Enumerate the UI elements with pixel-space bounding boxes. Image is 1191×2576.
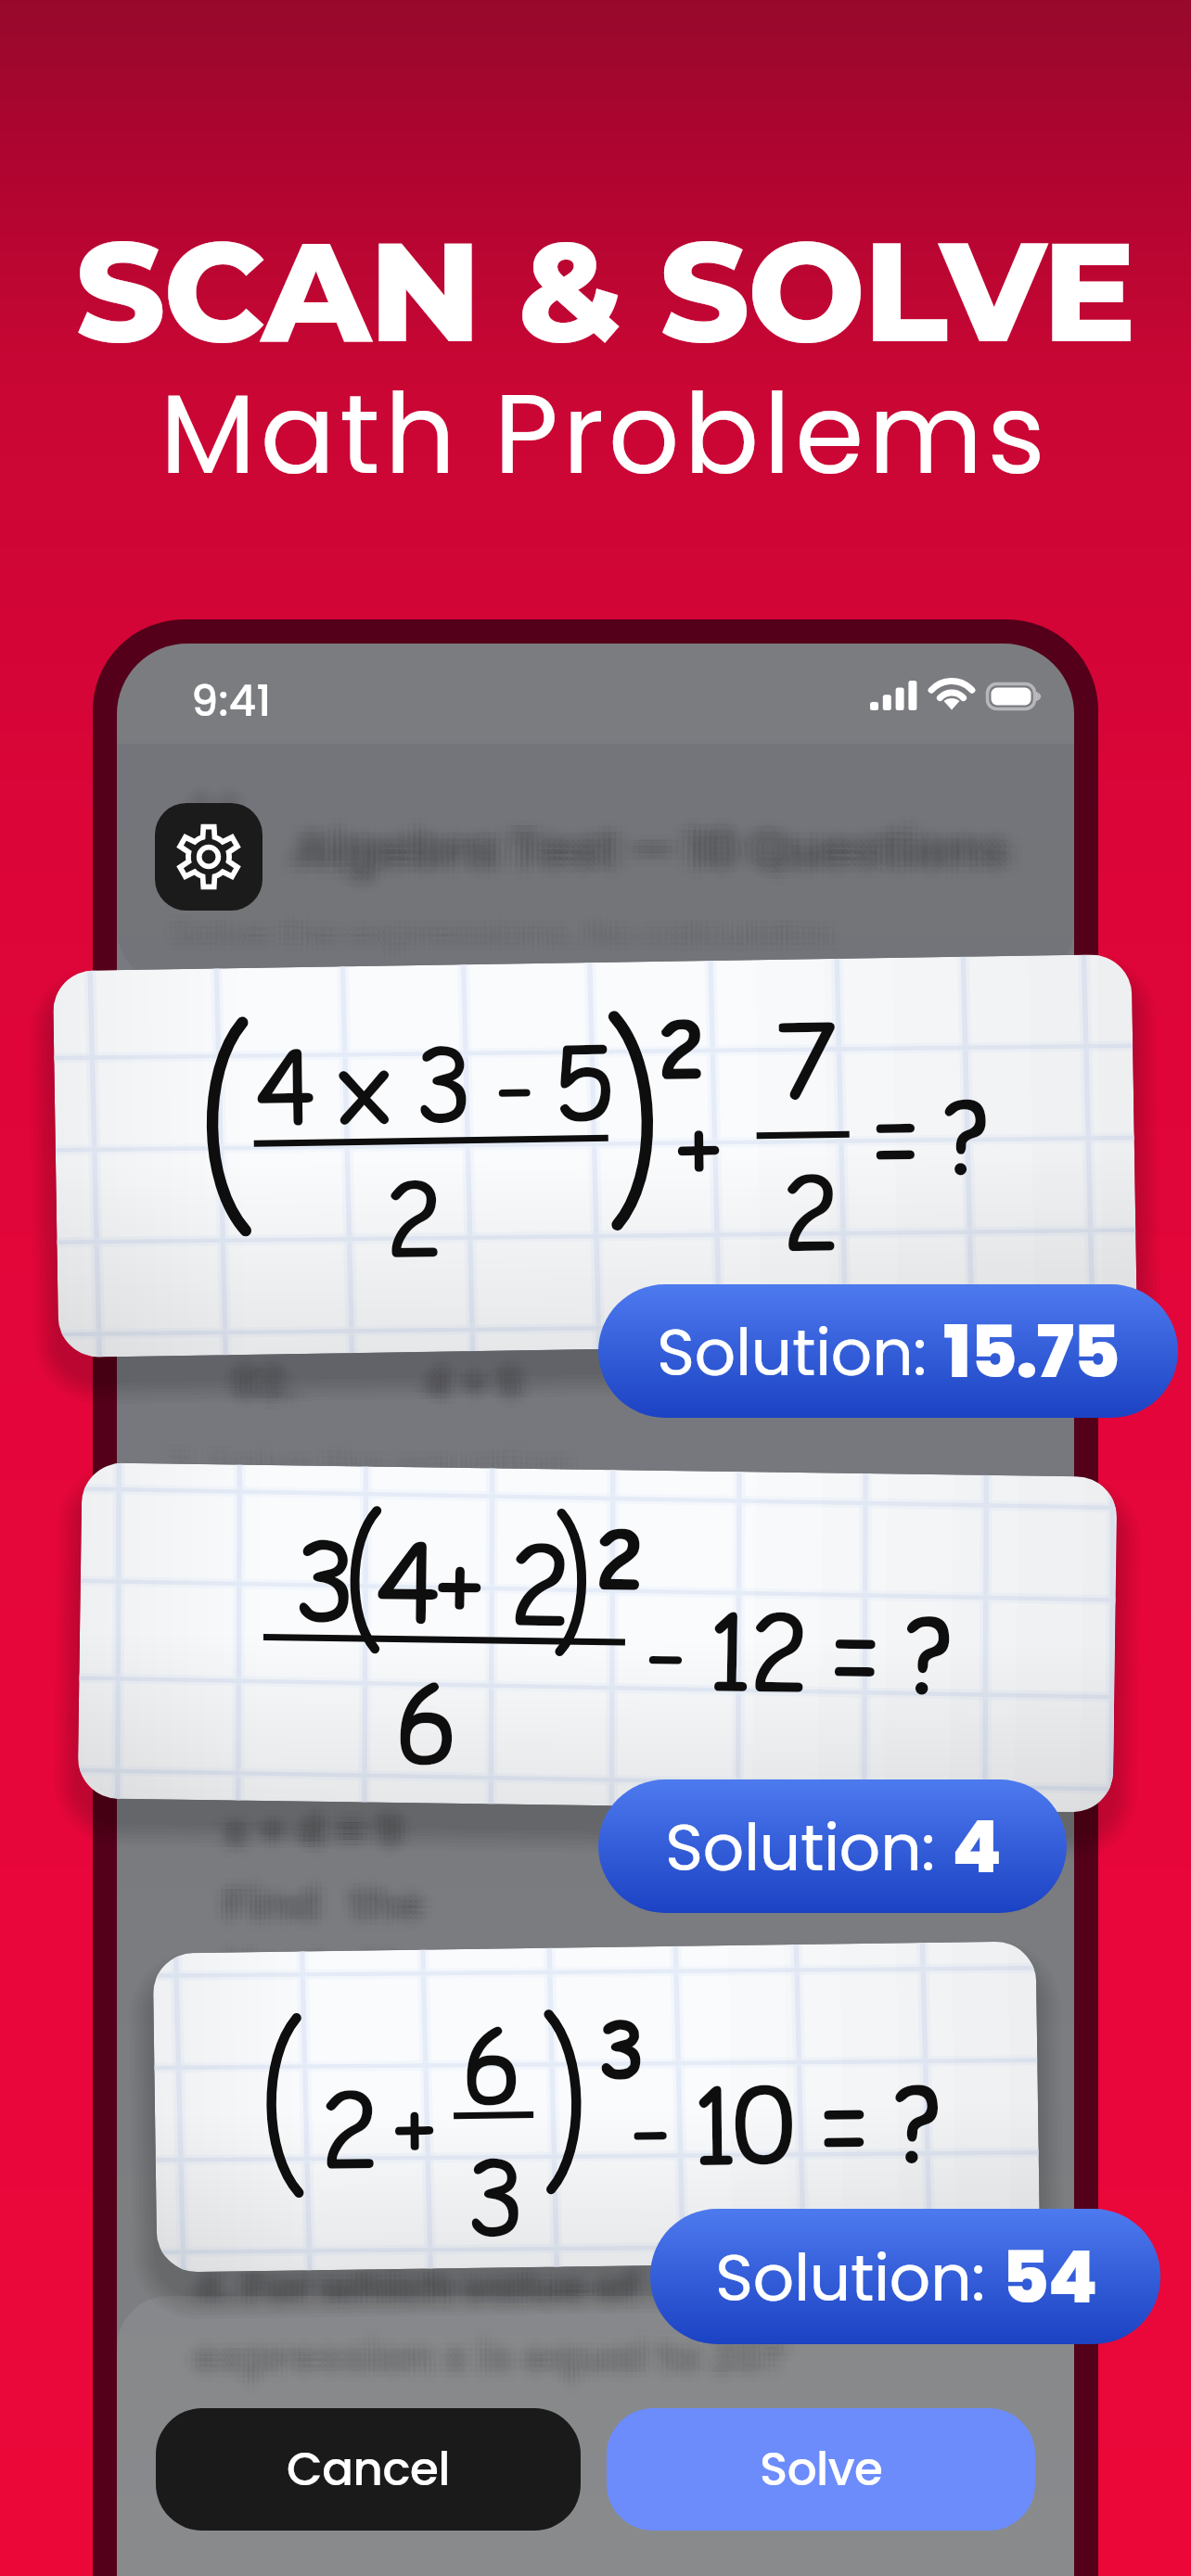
staticText: 3. Solve the equation	[167, 1432, 571, 1486]
staticText: expression x is equal to 20?	[203, 2322, 797, 2381]
staticText: x + 4 = 9	[212, 1795, 393, 1857]
staticText: ●●	[183, 781, 238, 818]
staticText: 02.	[232, 1343, 297, 1402]
staticText: Find the	[223, 1862, 425, 1924]
staticText: 02.	[232, 1359, 297, 1419]
staticText: Algebra Test — 10 Questions	[304, 808, 1020, 878]
staticText: x + 4 = 9	[208, 1801, 389, 1863]
staticText: Next Steps	[223, 1944, 484, 2006]
staticText: 02.	[237, 1359, 301, 1419]
staticText: 3	[597, 1995, 642, 2104]
staticText: expression x is equal to 20?	[203, 2333, 797, 2392]
button[interactable]: Settings	[155, 803, 263, 911]
staticText: ●●	[196, 781, 251, 818]
button[interactable]: Solution:	[598, 1284, 1178, 1418]
staticText: Algebra Test — 10 Questions	[299, 808, 1015, 878]
staticText: x + 4 = 9	[233, 1801, 414, 1863]
button[interactable]: Cancel	[156, 2408, 581, 2531]
staticText: 3. Solve the equation	[162, 1437, 567, 1492]
staticText: 3. Solve the equation	[172, 1437, 576, 1492]
staticText: Find the	[223, 1879, 425, 1941]
staticText: 02.	[237, 1343, 301, 1402]
staticText: 4 + 6	[423, 1365, 524, 1424]
staticText: Solve the expressions. No calculator.	[160, 912, 830, 964]
staticText: 4. For which value of	[193, 2264, 638, 2324]
staticText: Solution:	[665, 1802, 952, 1893]
staticText: x + 4 = 9	[212, 1801, 393, 1863]
staticText: Algebra Test — 10 Questions	[276, 814, 992, 885]
staticText: Algebra Test — 10 Questions	[293, 802, 1009, 873]
staticText: 3. Solve the equation	[167, 1443, 571, 1498]
button[interactable]: Solution:	[598, 1779, 1067, 1913]
staticText: Find the	[218, 1884, 420, 1946]
staticText: Next Steps	[212, 1938, 474, 2000]
staticText: Find the	[227, 1868, 429, 1930]
staticText: Next Steps	[233, 1932, 494, 1995]
staticText: 4 + 6	[428, 1359, 529, 1419]
staticText: expression x is equal to 20?	[203, 2327, 797, 2387]
staticText: x + 4 = 9	[223, 1806, 403, 1868]
staticText: Solve the expressions. No calculator.	[175, 912, 845, 964]
staticText: ●●	[192, 785, 248, 823]
staticText: Solve the expressions. No calculator.	[171, 912, 840, 964]
staticText: Find the	[218, 1873, 420, 1935]
staticText: Find the	[237, 1873, 440, 1935]
staticText: Algebra Test — 10 Questions	[304, 814, 1020, 885]
staticText: 4 + 6	[438, 1354, 539, 1413]
staticText: 2	[656, 994, 701, 1103]
staticText: 4 + 6	[423, 1354, 524, 1413]
staticText: Next Steps	[218, 1949, 480, 2011]
staticText: 4 + 6	[418, 1348, 519, 1408]
staticText: 4. For which value of	[183, 2259, 628, 2318]
staticText: x + 4 = 9	[212, 1806, 393, 1868]
staticText: 4 + 6	[413, 1359, 514, 1419]
staticText: 02.	[222, 1359, 287, 1419]
staticText: 4 x 3 - 5	[254, 1012, 611, 1158]
staticText: Algebra Test — 10 Questions	[282, 821, 998, 891]
staticText: 4 + 6	[408, 1354, 509, 1413]
staticText: expression x is equal to 20?	[183, 2333, 776, 2392]
staticText: x + 4 = 9	[223, 1812, 403, 1874]
staticText: 4 + 6	[433, 1359, 534, 1419]
staticText: 02.	[242, 1348, 307, 1408]
staticText: 2	[779, 1142, 837, 1283]
staticText: Find the	[227, 1862, 429, 1924]
staticText: expression x is equal to 20?	[188, 2316, 782, 2376]
staticText: 6	[393, 1649, 455, 1800]
staticText: Algebra Test — 10 Questions	[282, 814, 998, 885]
staticText: 4 + 6	[433, 1348, 534, 1408]
staticText: 4 + 6	[418, 1365, 519, 1424]
staticText: Next Steps	[218, 1944, 480, 2006]
staticText: x + 4 = 9	[227, 1812, 408, 1874]
staticText: Find the	[218, 1879, 420, 1941]
staticText: ●●	[192, 781, 248, 818]
staticText: 4 + 6	[423, 1343, 524, 1402]
staticText: Cancel	[287, 2437, 451, 2502]
staticText: x + 4 = 9	[223, 1795, 403, 1857]
staticText: expression x is equal to 20?	[188, 2327, 782, 2387]
staticText: 4 + 6	[428, 1348, 529, 1408]
staticText: 02.	[222, 1348, 287, 1408]
staticText: +	[674, 1074, 721, 1219]
staticText: Find the	[208, 1873, 410, 1935]
staticText: expression x is equal to 20?	[198, 2333, 791, 2392]
staticText: 02.	[242, 1354, 307, 1413]
button[interactable]: Solve	[607, 2408, 1035, 2531]
staticText: Algebra Test — 10 Questions	[304, 821, 1020, 891]
button[interactable]: Solution:	[650, 2209, 1160, 2344]
staticText: 02.	[227, 1343, 292, 1402]
staticText: Solve the expressions. No calculator.	[160, 901, 830, 953]
staticText: 4. For which value of	[193, 2253, 638, 2313]
staticText: expression x is equal to 20?	[183, 2327, 776, 2387]
staticText: Next Steps	[227, 1932, 489, 1995]
staticText: Solution:	[657, 1307, 943, 1397]
staticText: 15.75	[943, 1301, 1120, 1402]
staticText: 7	[775, 990, 833, 1131]
staticText: 02.	[232, 1365, 297, 1424]
staticText: Find the	[223, 1873, 425, 1935]
staticText: 4. For which value of	[198, 2264, 643, 2324]
staticText: Find the	[227, 1879, 429, 1941]
staticText: Find the	[212, 1879, 415, 1941]
staticText: Solve the expressions. No calculator.	[166, 901, 836, 953]
staticText: 4. For which value of	[198, 2259, 643, 2318]
